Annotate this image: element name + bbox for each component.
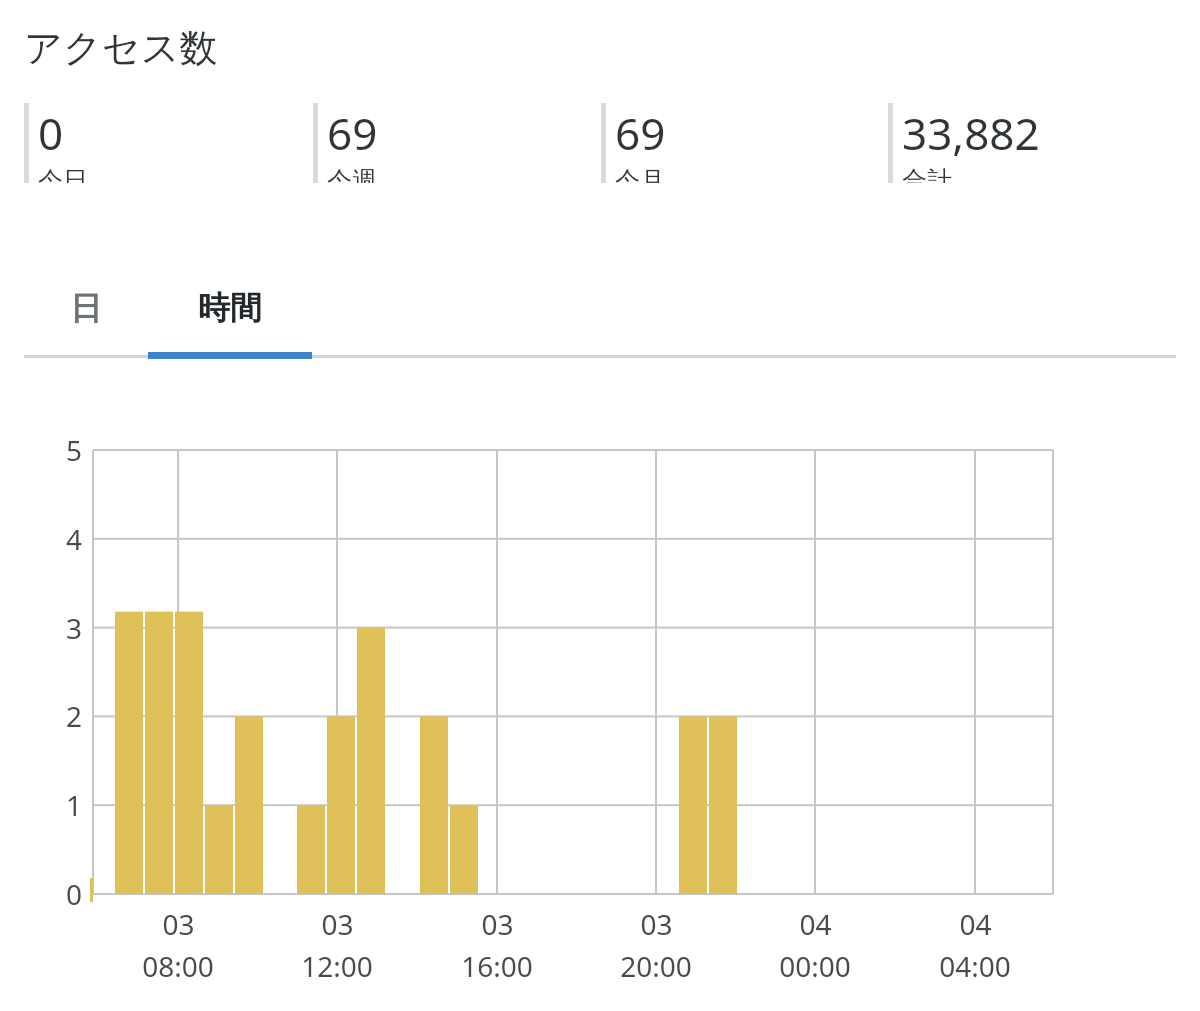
staticText: 今月 — [615, 165, 665, 183]
staticText: 12:00 — [301, 947, 373, 985]
button[interactable]: 33,882 — [888, 103, 1031, 183]
staticText: 33,882 — [902, 103, 1040, 163]
staticText: 03 — [321, 905, 354, 943]
staticText: 0 — [50, 875, 82, 913]
staticText: 1 — [50, 786, 82, 824]
button[interactable]: 69 — [313, 103, 369, 183]
staticText: 20:00 — [620, 947, 692, 985]
staticText: 2 — [50, 697, 82, 735]
staticText: 時間 — [198, 288, 262, 328]
staticText: 04:00 — [939, 947, 1011, 985]
staticText: 69 — [327, 103, 378, 163]
staticText: 0 — [38, 103, 64, 163]
staticText: 4 — [50, 520, 82, 558]
staticText: 3 — [50, 609, 82, 647]
staticText: 16:00 — [461, 947, 533, 985]
staticText: 03 — [640, 905, 673, 943]
staticText: 69 — [615, 103, 666, 163]
button[interactable]: 69 — [601, 103, 657, 183]
staticText: 今週 — [327, 165, 377, 183]
staticText: 00:00 — [779, 947, 851, 985]
button[interactable]: 時間 — [148, 258, 312, 358]
staticText: 5 — [50, 431, 82, 469]
button[interactable]: 日 — [24, 258, 148, 358]
staticText: 日 — [70, 288, 102, 328]
staticText: 03 — [162, 905, 195, 943]
staticText: 03 — [481, 905, 514, 943]
staticText: 今日 — [38, 165, 88, 183]
staticText: 08:00 — [142, 947, 214, 985]
button[interactable]: 0 — [24, 103, 79, 183]
staticText: 合計 — [902, 165, 952, 183]
staticText: 04 — [799, 905, 832, 943]
staticText: 04 — [959, 905, 992, 943]
staticText: アクセス数 — [24, 24, 218, 72]
